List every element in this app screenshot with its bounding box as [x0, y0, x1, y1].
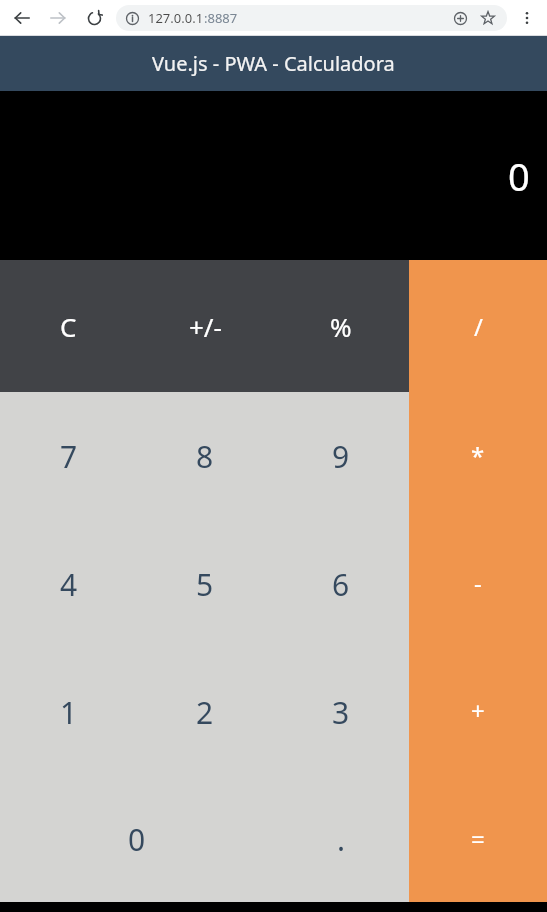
staticText: /: [474, 310, 483, 343]
staticText: 5: [196, 564, 214, 605]
button[interactable]: Forward: [44, 4, 72, 32]
staticText: 0: [128, 819, 146, 860]
staticText: 0: [508, 150, 530, 202]
button[interactable]: =: [409, 774, 547, 902]
staticText: %: [330, 309, 352, 344]
staticText: -: [474, 566, 482, 599]
button[interactable]: 5: [137, 520, 273, 648]
staticText: 127.0.0.1: [148, 9, 204, 27]
button[interactable]: %: [273, 260, 409, 392]
button[interactable]: 6: [273, 520, 409, 648]
staticText: C: [60, 309, 77, 344]
button[interactable]: C: [0, 260, 137, 392]
staticText: 7: [60, 436, 78, 477]
staticText: :8887: [204, 9, 238, 27]
staticText: 2: [196, 692, 214, 733]
button[interactable]: Reload: [80, 4, 108, 32]
staticText: Vue.js - PWA - Calculadora: [152, 50, 395, 77]
button[interactable]: /: [409, 260, 547, 392]
button[interactable]: 7: [0, 392, 137, 520]
staticText: 6: [332, 564, 350, 605]
button[interactable]: +: [409, 646, 547, 774]
button[interactable]: 4: [0, 520, 137, 648]
button[interactable]: Bookmark: [477, 7, 499, 29]
staticText: 3: [332, 692, 350, 733]
staticText: +/-: [189, 309, 222, 344]
staticText: 9: [332, 436, 350, 477]
button[interactable]: .: [273, 776, 409, 902]
button[interactable]: 0: [0, 776, 273, 902]
button[interactable]: Install app: [449, 7, 471, 29]
staticText: .: [337, 819, 346, 860]
button[interactable]: *: [409, 392, 547, 519]
button[interactable]: 1: [0, 648, 137, 776]
staticText: 8: [196, 436, 214, 477]
staticText: 4: [60, 564, 78, 605]
staticText: +: [471, 694, 485, 727]
button[interactable]: More options: [513, 4, 541, 32]
button[interactable]: 9: [273, 392, 409, 520]
button[interactable]: 2: [137, 648, 273, 776]
button[interactable]: Back: [8, 4, 36, 32]
button[interactable]: 8: [137, 392, 273, 520]
button[interactable]: 3: [273, 648, 409, 776]
button[interactable]: 127.0.0.1: [116, 5, 507, 31]
staticText: 1: [60, 692, 78, 733]
button[interactable]: +/-: [137, 260, 273, 392]
staticText: =: [471, 822, 485, 855]
staticText: *: [471, 439, 485, 472]
button[interactable]: -: [409, 519, 547, 646]
